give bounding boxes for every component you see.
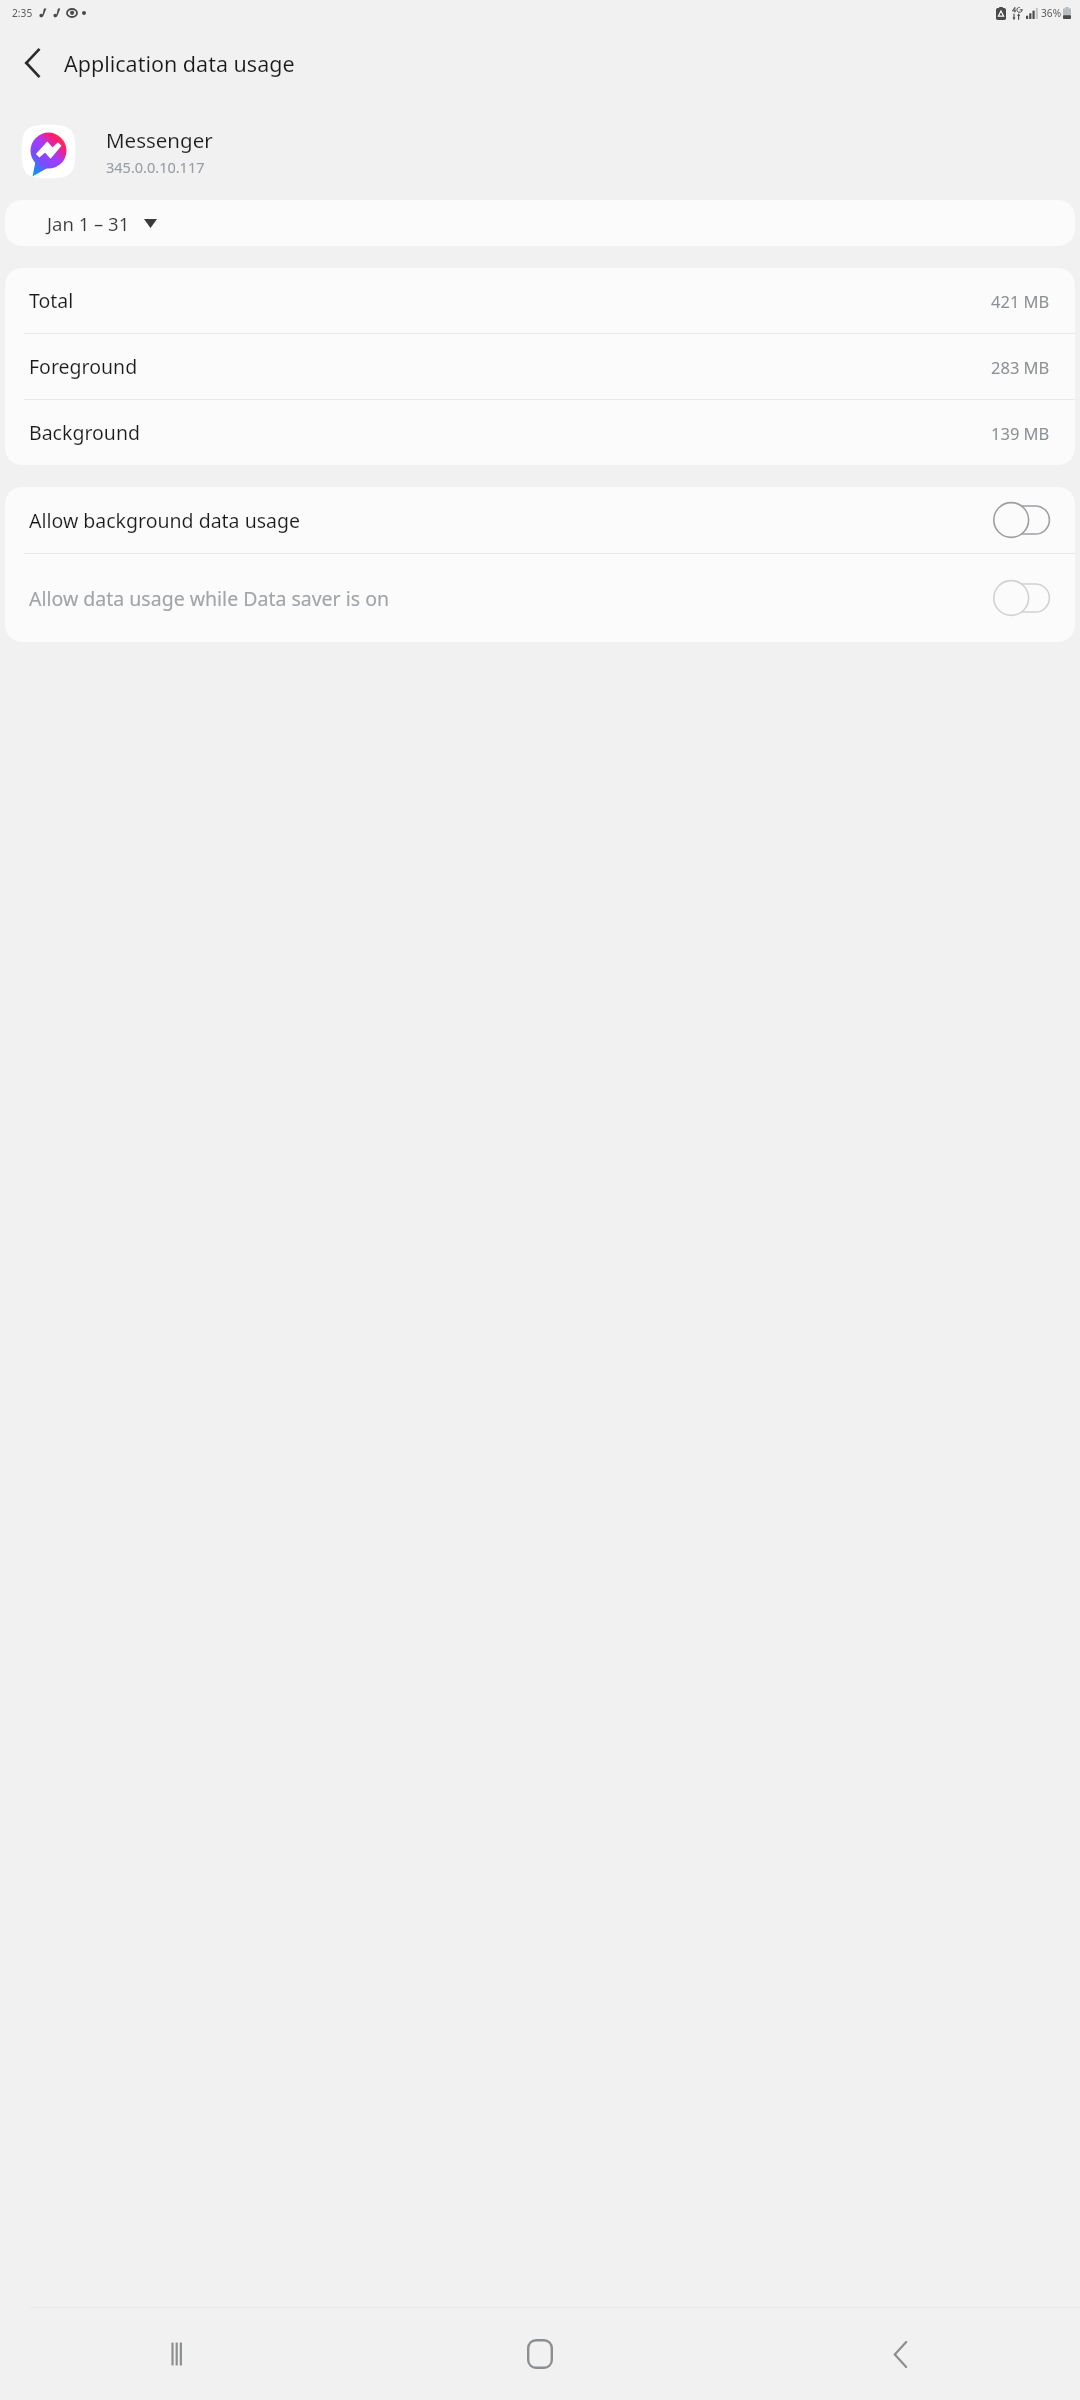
staticText: Jan 1 – 31 bbox=[47, 211, 130, 236]
button[interactable]: Total bbox=[5, 268, 1075, 333]
staticText: 36% bbox=[1041, 6, 1062, 20]
button[interactable]: Background bbox=[5, 400, 1075, 465]
button[interactable]: Toggle bbox=[993, 501, 1051, 539]
staticText: 139 MB bbox=[991, 422, 1050, 444]
staticText: 283 MB bbox=[991, 356, 1050, 378]
staticText: 345.0.0.10.117 bbox=[106, 157, 205, 177]
button[interactable]: Foreground bbox=[5, 334, 1075, 399]
staticText: 421 MB bbox=[991, 290, 1050, 312]
staticText: Messenger bbox=[106, 126, 213, 154]
staticText: Allow background data usage bbox=[29, 507, 981, 534]
staticText: Total bbox=[29, 287, 74, 314]
staticText: Background bbox=[29, 419, 140, 446]
staticText: Application data usage bbox=[64, 49, 295, 78]
button[interactable]: Toggle bbox=[993, 579, 1051, 617]
button[interactable]: Jan 1 – 31 bbox=[47, 211, 157, 236]
staticText: 2:35 bbox=[12, 6, 33, 20]
button[interactable]: Recents bbox=[0, 2308, 360, 2400]
staticText: Foreground bbox=[29, 353, 138, 380]
button[interactable]: Allow data usage while Data saver is on bbox=[5, 554, 1075, 642]
button[interactable]: Home bbox=[360, 2308, 720, 2400]
staticText: Allow data usage while Data saver is on bbox=[29, 585, 981, 612]
button[interactable]: Allow background data usage bbox=[5, 487, 1075, 553]
button[interactable]: Navigate up bbox=[8, 39, 56, 87]
button[interactable]: Back bbox=[720, 2308, 1080, 2400]
